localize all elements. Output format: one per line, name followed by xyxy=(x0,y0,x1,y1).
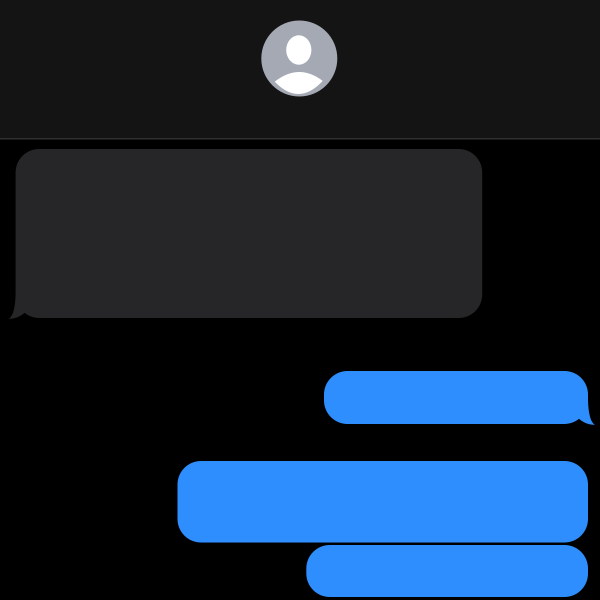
button[interactable]: Contact info xyxy=(261,20,337,96)
